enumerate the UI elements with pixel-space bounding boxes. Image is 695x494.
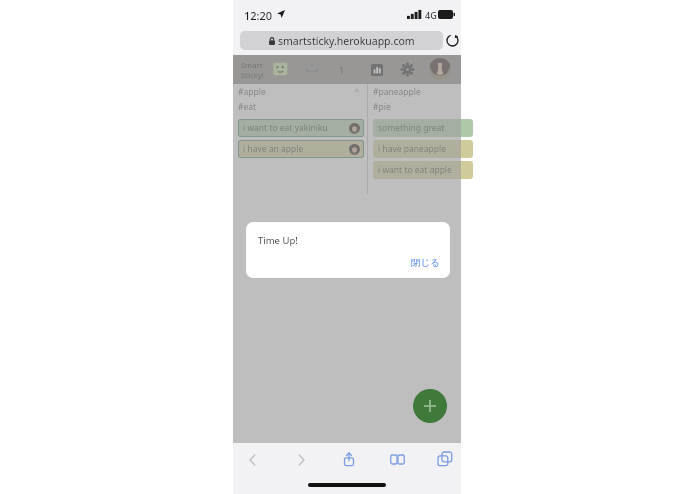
staticText: Sticky! (241, 70, 264, 80)
staticText: 4G (425, 9, 437, 21)
staticText: #apple (238, 86, 266, 98)
button[interactable]: Back (241, 448, 265, 472)
staticText: i have paneapple (378, 143, 447, 155)
button[interactable]: i want to eat apple pi (373, 161, 473, 179)
button[interactable]: Tabs (433, 447, 457, 471)
button[interactable]: Share (337, 447, 361, 471)
button[interactable]: Sync (305, 63, 319, 77)
button[interactable]: Add note (413, 389, 447, 423)
button[interactable]: Reload (444, 32, 461, 49)
button[interactable]: Bookmarks (385, 447, 409, 471)
button[interactable]: i have paneapple (373, 140, 473, 158)
button[interactable]: Settings (401, 63, 414, 76)
staticText: i want to eat apple pi (378, 164, 453, 176)
button[interactable]: smartsticky.herokuapp.com (240, 31, 443, 50)
staticText: i have an apple (243, 143, 304, 155)
staticText: Smart (241, 60, 263, 70)
button[interactable]: Statistics (371, 64, 383, 76)
button[interactable]: Account (429, 58, 451, 80)
staticText: smartsticky.herokuapp.com (278, 34, 415, 48)
button[interactable]: Mascot (271, 60, 290, 79)
staticText: #pie (373, 101, 391, 113)
staticText: something great idea (378, 122, 453, 134)
staticText: 1 (339, 64, 345, 76)
button[interactable]: something great idea (373, 119, 473, 137)
staticText: i want to eat yakiniku (243, 122, 328, 134)
button[interactable]: i want to eat yakiniku (238, 119, 364, 137)
staticText: #eat (238, 101, 257, 113)
button[interactable]: Forward (289, 448, 313, 472)
button[interactable]: 閉じる (407, 255, 444, 271)
staticText: Time Up! (258, 234, 298, 247)
button[interactable]: i have an apple (238, 140, 364, 158)
staticText: #paneapple (373, 86, 421, 98)
staticText: 閉じる (411, 257, 440, 269)
staticText: 12:20 (244, 8, 273, 23)
staticText: ^ (355, 87, 360, 97)
